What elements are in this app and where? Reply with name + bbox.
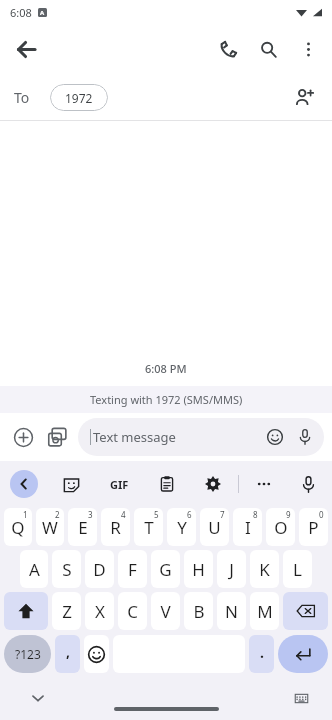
staticText: V [160,600,171,623]
staticText: H [192,558,205,581]
button[interactable]: More [249,469,279,499]
button[interactable]: P [299,508,328,546]
button[interactable]: Search [248,29,288,69]
staticText: W [42,516,58,539]
button[interactable]: Voice input [290,422,320,452]
button[interactable]: Clipboard [152,469,182,499]
staticText: 3 [88,509,93,520]
staticText: 0 [319,509,324,520]
staticText: K [259,558,270,581]
staticText: T [144,516,154,539]
button[interactable]: I [233,508,262,546]
staticText: A [40,9,45,17]
button[interactable]: A [20,550,48,588]
staticText: To [14,88,30,107]
button[interactable]: Hide keyboard [24,684,52,712]
staticText: Y [177,516,187,539]
staticText: C [127,600,138,623]
staticText: M [257,600,273,623]
button[interactable]: Text message [78,418,324,456]
button[interactable]: Add attachment [6,420,40,454]
button[interactable]: ?123 [4,635,51,673]
button[interactable]: M [250,592,279,630]
staticText: X [95,600,105,623]
button[interactable]: L [283,550,312,588]
button[interactable]: Add people [284,77,324,117]
button[interactable]: O [266,508,295,546]
staticText: F [128,558,137,581]
staticText: D [93,558,106,581]
staticText: E [78,516,88,539]
button[interactable]: GIF [102,467,136,501]
staticText: 9 [286,509,291,520]
button[interactable]: Emoji [84,635,109,673]
button[interactable]: S [52,550,81,588]
staticText: J [229,558,234,581]
staticText: 6:08 [10,5,32,20]
button[interactable]: F [118,550,147,588]
staticText: B [193,600,205,623]
button[interactable]: Backspace [283,592,328,630]
staticText: O [274,516,288,539]
button[interactable]: Enter [278,635,328,673]
staticText: P [308,516,319,539]
staticText: 1 [23,509,28,520]
button[interactable]: E [68,508,97,546]
button[interactable]: Settings [198,469,228,499]
button[interactable]: Z [52,592,81,630]
staticText: Text message [93,428,260,446]
staticText: 5 [154,509,159,520]
staticText: S [62,558,72,581]
staticText: G [159,558,172,581]
button[interactable]: B [184,592,213,630]
button[interactable]: More options [288,29,328,69]
button[interactable]: Switch keyboard [288,685,314,711]
button[interactable]: W [36,508,64,546]
button[interactable]: G [151,550,180,588]
button[interactable]: T [134,508,163,546]
staticText: N [225,600,238,623]
button[interactable]: Voice typing [292,468,324,500]
button[interactable]: Stickers [56,469,86,499]
staticText: L [293,558,302,581]
button[interactable]: Back [6,29,46,69]
staticText: , [66,642,70,661]
button[interactable]: J [217,550,246,588]
button[interactable]: D [85,550,114,588]
button[interactable]: H [184,550,213,588]
staticText: 1972 [65,90,93,106]
button[interactable]: Shift [4,592,48,630]
staticText: Z [62,600,72,623]
staticText: U [208,516,221,539]
button[interactable]: , [55,635,80,673]
button[interactable]: 1972 [50,84,108,111]
staticText: Texting with 1972 (SMS/MMS) [90,392,243,407]
button[interactable]: . [249,635,274,673]
button[interactable]: Y [167,508,196,546]
staticText: I [245,516,251,539]
button[interactable]: V [151,592,180,630]
button[interactable]: U [200,508,229,546]
staticText: 7 [220,509,225,520]
button[interactable]: C [118,592,147,630]
staticText: Q [11,516,25,539]
button[interactable]: Q [4,508,32,546]
staticText: R [110,516,121,539]
staticText: 2 [55,509,60,520]
staticText: A [29,558,40,581]
staticText: 4 [121,509,126,520]
staticText: 8 [253,509,258,520]
button[interactable]: Call [208,29,248,69]
button[interactable]: K [250,550,279,588]
button[interactable]: Emoji [260,422,290,452]
button[interactable]: Camera [40,420,74,454]
staticText: ?123 [15,646,41,662]
button[interactable]: Expand toolbar [10,470,38,498]
staticText: GIF [110,477,129,492]
button[interactable]: X [85,592,114,630]
staticText: 6:08 PM [145,361,187,376]
button[interactable]: R [101,508,130,546]
staticText: 6 [187,509,192,520]
button[interactable]: N [217,592,246,630]
